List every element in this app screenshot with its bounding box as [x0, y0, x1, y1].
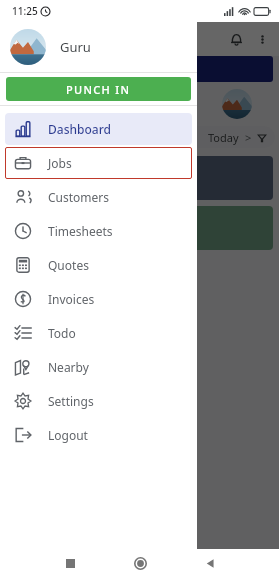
staticText: PUNCH IN — [66, 82, 131, 97]
button[interactable]: Dashboard — [5, 113, 192, 145]
staticText: ayas, Simla, — [4, 434, 59, 448]
staticText: uotes — [19, 281, 46, 295]
staticText: d — [10, 221, 17, 236]
button[interactable]: Recent apps — [50, 549, 90, 577]
button[interactable]: Settings — [5, 385, 192, 417]
staticText: art — [6, 171, 21, 186]
button[interactable]: Todo — [5, 317, 192, 349]
button[interactable]: Logout — [5, 419, 192, 451]
button[interactable]: Back — [190, 549, 230, 577]
staticText: Customers — [48, 189, 110, 205]
staticText: Dashboard — [48, 121, 111, 137]
button[interactable]: Jobs — [5, 147, 192, 179]
button[interactable]: Home — [120, 549, 160, 577]
staticText: Nearby — [48, 359, 89, 375]
staticText: Settings — [48, 393, 94, 409]
staticText: Today — [208, 130, 239, 145]
button[interactable]: Timesheets — [5, 215, 192, 247]
staticText: Jobs — [48, 155, 72, 171]
button[interactable]: Invoices — [5, 283, 192, 315]
staticText: Sent to Service Provider — [19, 334, 51, 365]
button[interactable]: PUNCH IN — [6, 77, 191, 101]
staticText: Timesheets — [48, 223, 113, 239]
button[interactable]: Quotes — [5, 249, 192, 281]
staticText: > — [245, 130, 252, 145]
button[interactable]: Guru — [0, 22, 197, 72]
button[interactable]: Customers — [5, 181, 192, 213]
staticText: 11:25 — [12, 4, 38, 18]
staticText: Logout — [48, 427, 88, 443]
staticText: Quotes — [48, 257, 89, 273]
staticText: Guru — [60, 38, 91, 56]
staticText: Invoices — [48, 291, 95, 307]
button[interactable]: Nearby — [5, 351, 192, 383]
staticText: Todo — [48, 325, 76, 341]
